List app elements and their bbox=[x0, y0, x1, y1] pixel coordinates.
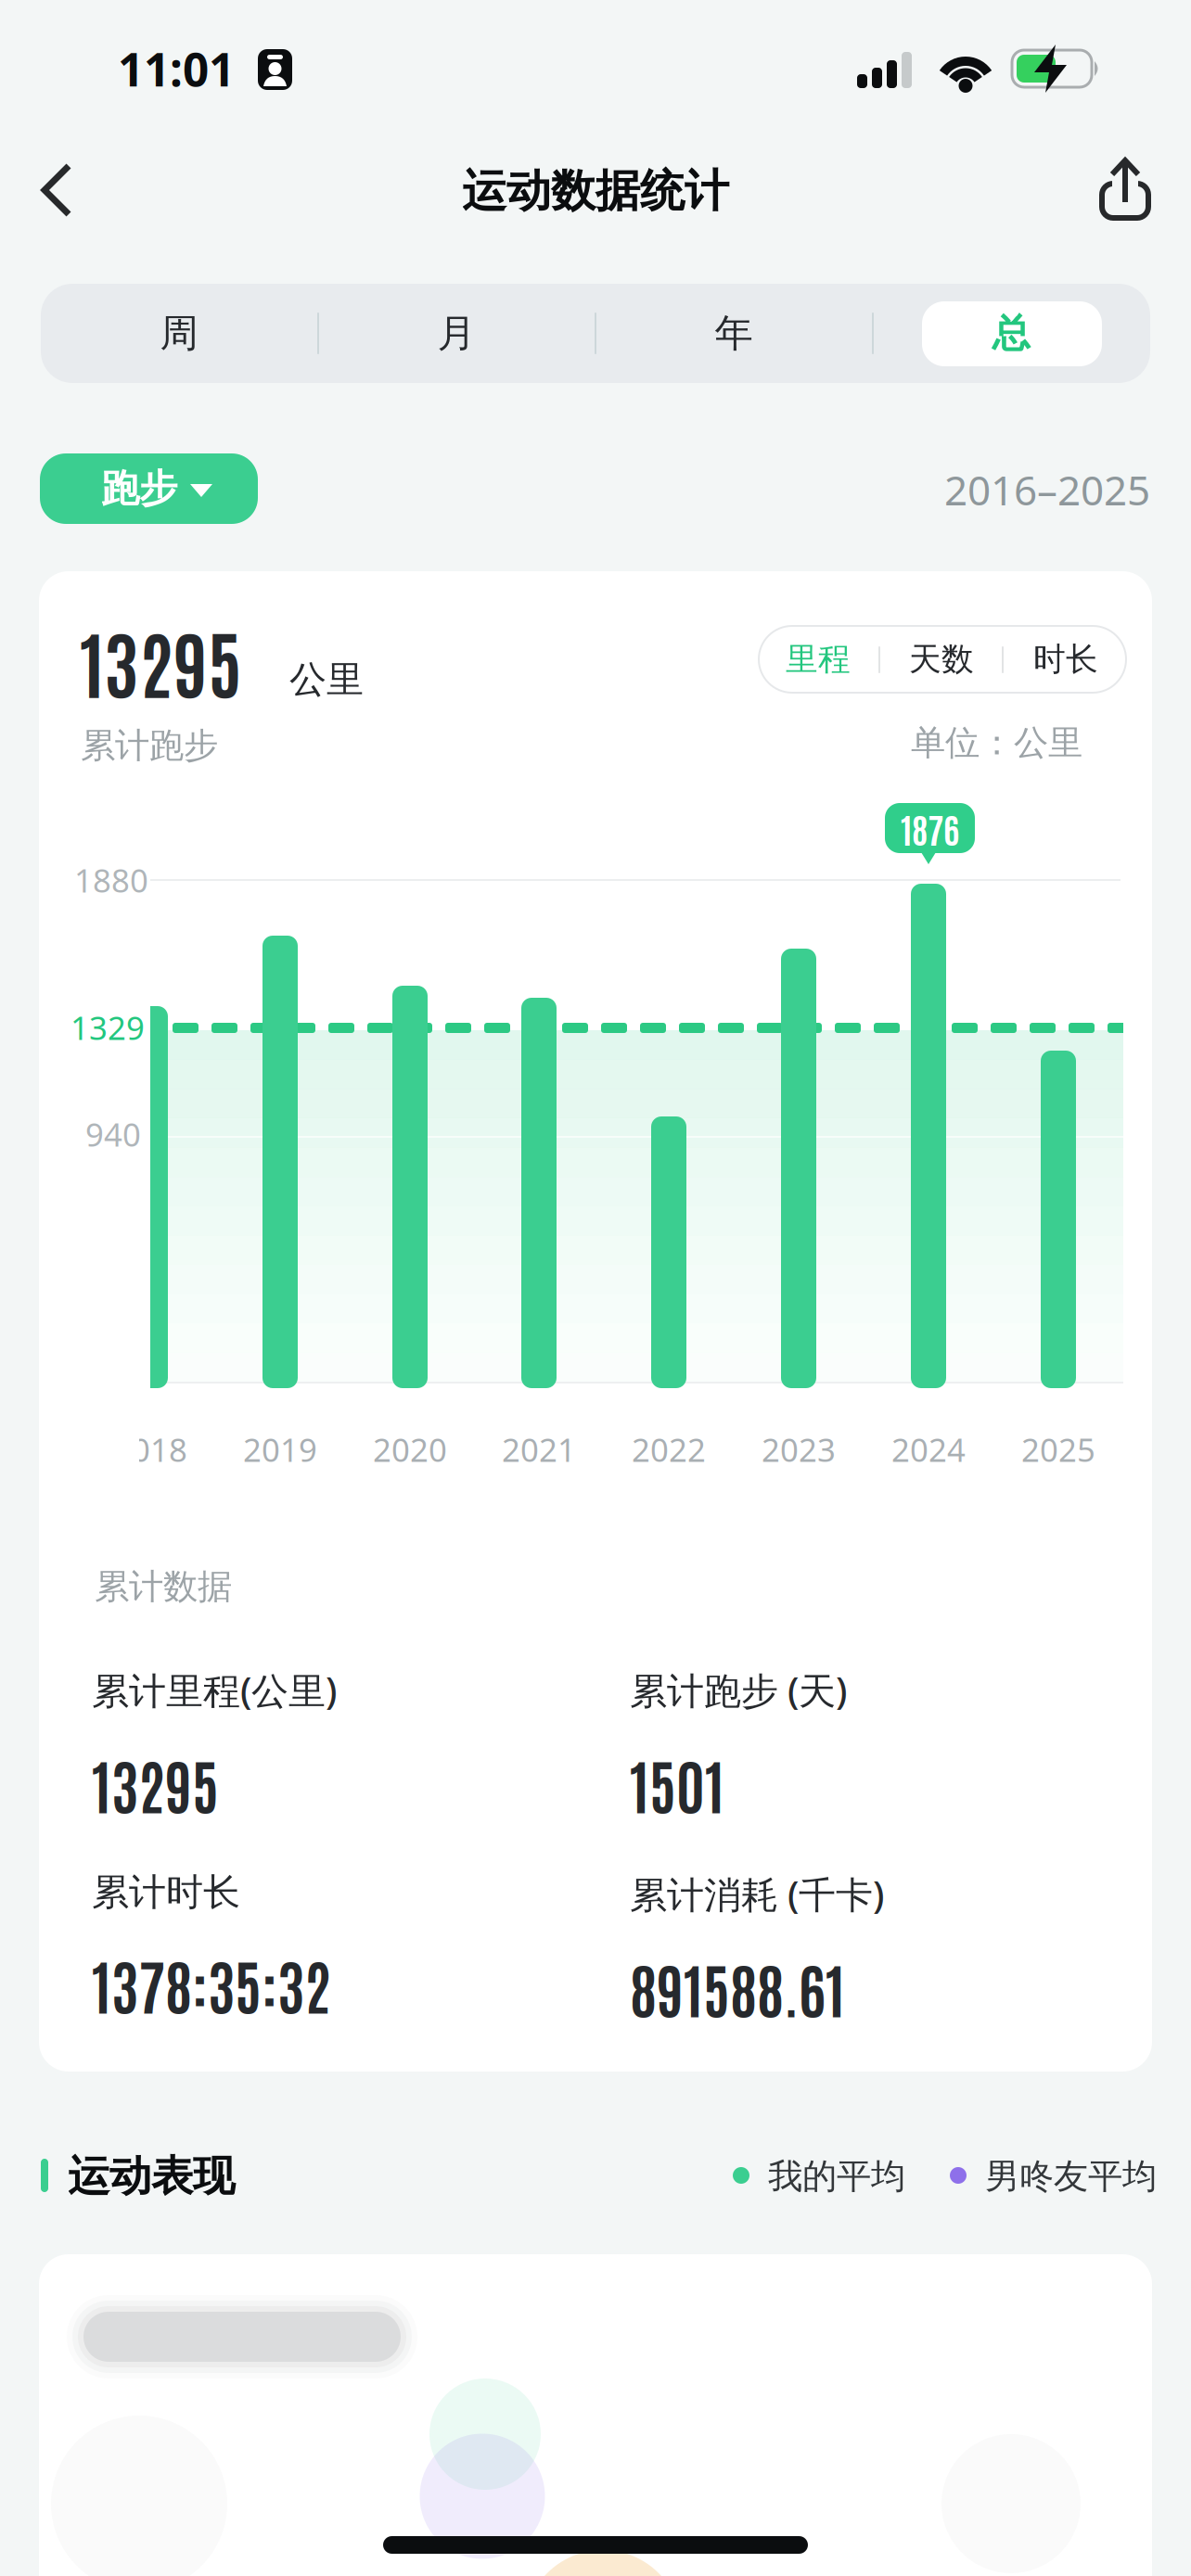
button[interactable]: 周 bbox=[41, 284, 317, 383]
staticText: 公里 bbox=[289, 657, 364, 702]
staticText: 13295 bbox=[80, 612, 242, 708]
button[interactable]: 跑步 bbox=[40, 453, 258, 524]
staticText: 13295 bbox=[92, 1746, 219, 1821]
staticText: 年 bbox=[715, 310, 753, 357]
staticText: 2020 bbox=[373, 1428, 447, 1471]
staticText: 男咚友平均 bbox=[985, 2155, 1157, 2198]
staticText: 累计数据 bbox=[95, 1565, 232, 1608]
button[interactable]: 分享 bbox=[1095, 154, 1154, 221]
staticText: 1880 bbox=[74, 859, 148, 901]
staticText: 累计里程(公里) bbox=[92, 1665, 337, 1715]
staticText: 2025 bbox=[1021, 1428, 1095, 1471]
staticText: 2024 bbox=[891, 1428, 966, 1471]
staticText: 2019 bbox=[243, 1428, 317, 1471]
button[interactable]: 时长 bbox=[1005, 626, 1126, 693]
staticText: 1329 bbox=[70, 1006, 145, 1049]
staticText: 累计时长 bbox=[92, 1869, 240, 1915]
staticText: 月 bbox=[437, 310, 475, 357]
button[interactable]: 返回 bbox=[41, 159, 96, 222]
staticText: 1501 bbox=[630, 1746, 724, 1821]
staticText: 周 bbox=[160, 310, 198, 357]
staticText: 1378:35:32 bbox=[92, 1946, 331, 2022]
staticText: 跑步 bbox=[101, 465, 177, 512]
button[interactable]: 年 bbox=[595, 284, 872, 383]
staticText: 里程 bbox=[786, 640, 851, 679]
staticText: 11:01 bbox=[118, 38, 235, 99]
staticText: 运动表现 bbox=[68, 2151, 235, 2202]
staticText: 天数 bbox=[909, 640, 974, 679]
button[interactable]: 里程 bbox=[759, 626, 877, 693]
staticText: 1876 bbox=[901, 806, 959, 850]
button[interactable]: 月 bbox=[318, 284, 595, 383]
staticText: 2021 bbox=[502, 1428, 576, 1471]
staticText: 2016–2025 bbox=[944, 463, 1150, 517]
button[interactable]: 天数 bbox=[881, 626, 1002, 693]
staticText: 我的平均 bbox=[768, 2155, 905, 2198]
staticText: 2022 bbox=[632, 1428, 706, 1471]
staticText: 940 bbox=[85, 1113, 141, 1155]
staticText: 累计跑步 (天) bbox=[630, 1665, 847, 1715]
staticText: 运动数据统计 bbox=[462, 164, 729, 218]
staticText: 891588.61 bbox=[630, 1950, 845, 2025]
staticText: 2023 bbox=[762, 1428, 836, 1471]
button[interactable]: 总 bbox=[873, 284, 1149, 383]
staticText: 累计消耗 (千卡) bbox=[630, 1869, 884, 1919]
staticText: 累计跑步 bbox=[81, 724, 218, 767]
staticText: 总 bbox=[992, 310, 1030, 357]
staticText: 2018 bbox=[113, 1428, 187, 1471]
staticText: 单位：公里 bbox=[911, 722, 1082, 764]
staticText: 时长 bbox=[1033, 640, 1098, 679]
